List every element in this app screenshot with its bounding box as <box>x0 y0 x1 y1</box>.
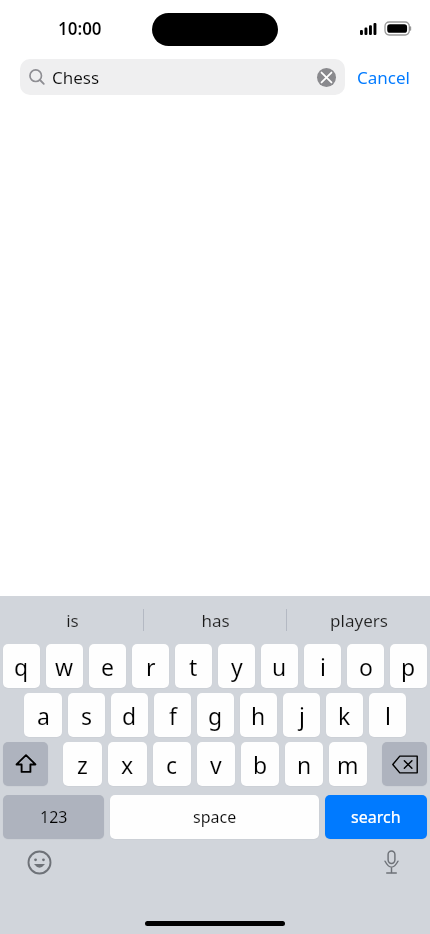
button[interactable]: d <box>111 693 148 737</box>
staticText: f <box>169 700 177 731</box>
button[interactable]: is <box>0 596 144 644</box>
button[interactable]: b <box>241 742 279 786</box>
button[interactable]: u <box>261 644 298 688</box>
button[interactable]: t <box>175 644 212 688</box>
staticText: y <box>231 651 243 682</box>
button[interactable]: x <box>108 742 147 786</box>
button[interactable]: e <box>89 644 126 688</box>
staticText: q <box>14 651 29 682</box>
button[interactable]: j <box>283 693 320 737</box>
staticText: 10:00 <box>58 17 102 40</box>
staticText: players <box>330 609 388 632</box>
staticText: m <box>337 749 359 780</box>
staticText: has <box>201 609 230 632</box>
button[interactable]: h <box>240 693 277 737</box>
staticText: Chess <box>52 66 317 89</box>
staticText: c <box>166 749 178 780</box>
staticText: o <box>359 651 373 682</box>
button[interactable]: v <box>197 742 235 786</box>
button[interactable]: y <box>218 644 255 688</box>
button[interactable]: q <box>3 644 40 688</box>
staticText: Cancel <box>357 66 410 89</box>
button[interactable]: z <box>63 742 102 786</box>
staticText: b <box>253 749 268 780</box>
staticText: t <box>189 651 198 682</box>
button[interactable]: Clear text <box>317 68 336 87</box>
staticText: j <box>299 700 305 731</box>
staticText: v <box>210 749 222 780</box>
button[interactable]: has <box>144 596 287 644</box>
button[interactable]: Emoji keyboard <box>22 845 56 879</box>
button[interactable]: m <box>329 742 367 786</box>
button[interactable]: g <box>197 693 234 737</box>
staticText: k <box>338 700 351 731</box>
button[interactable]: c <box>153 742 191 786</box>
staticText: z <box>77 749 88 780</box>
button[interactable]: Backspace <box>382 742 427 786</box>
button[interactable]: Shift <box>3 742 48 786</box>
button[interactable]: s <box>68 693 105 737</box>
button[interactable]: space <box>110 795 319 839</box>
button[interactable]: 123 <box>3 795 104 839</box>
button[interactable]: Cancel <box>345 62 410 93</box>
staticText: is <box>66 609 79 632</box>
staticText: u <box>272 651 287 682</box>
staticText: w <box>55 651 74 682</box>
staticText: r <box>146 651 156 682</box>
button[interactable]: p <box>390 644 427 688</box>
button[interactable]: w <box>46 644 83 688</box>
staticText: a <box>37 700 50 731</box>
staticText: d <box>122 700 137 731</box>
staticText: 123 <box>40 806 68 828</box>
button[interactable]: search <box>325 795 427 839</box>
button[interactable]: Chess <box>20 59 345 95</box>
button[interactable]: r <box>132 644 169 688</box>
button[interactable]: l <box>369 693 406 737</box>
staticText: space <box>193 806 237 828</box>
button[interactable]: k <box>326 693 363 737</box>
staticText: s <box>81 700 93 731</box>
button[interactable]: o <box>347 644 384 688</box>
staticText: g <box>208 700 223 731</box>
button[interactable]: n <box>285 742 323 786</box>
button[interactable]: a <box>24 693 62 737</box>
button[interactable]: Dictation <box>374 845 408 879</box>
staticText: p <box>401 651 416 682</box>
staticText: h <box>251 700 266 731</box>
button[interactable]: f <box>154 693 191 737</box>
staticText: search <box>351 806 401 828</box>
staticText: x <box>121 749 134 780</box>
staticText: n <box>297 749 312 780</box>
staticText: i <box>320 651 326 682</box>
staticText: l <box>385 700 391 731</box>
button[interactable]: players <box>287 596 430 644</box>
staticText: e <box>101 651 114 682</box>
button[interactable]: i <box>304 644 341 688</box>
